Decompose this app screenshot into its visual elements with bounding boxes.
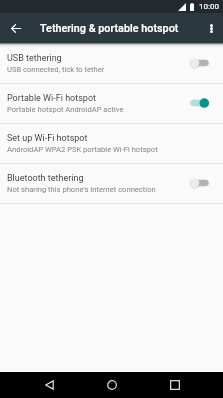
button[interactable]: Home xyxy=(99,372,125,398)
button[interactable]: More options xyxy=(199,13,223,43)
button[interactable]: Bluetooth tethering xyxy=(0,164,223,204)
staticText: AndroidAP WPA2 PSK portable Wi-Fi hotspo… xyxy=(7,145,158,154)
staticText: Tethering & portable hotspot xyxy=(40,22,179,35)
staticText: Set up Wi-Fi hotspot xyxy=(7,133,88,144)
button[interactable]: Portable Wi-Fi hotspot xyxy=(0,84,223,124)
staticText: USB connected, tick to tether xyxy=(7,65,105,74)
staticText: 10:00 xyxy=(199,2,219,11)
staticText: USB tethering xyxy=(7,53,62,64)
button[interactable]: Recent apps xyxy=(162,372,188,398)
staticText: Not sharing this phone's Internet connec… xyxy=(7,185,156,194)
button[interactable]: Set up Wi-Fi hotspot xyxy=(0,124,223,164)
button[interactable]: Back xyxy=(36,372,62,398)
staticText: Portable hotspot AndroidAP active xyxy=(7,105,124,114)
staticText: Portable Wi-Fi hotspot xyxy=(7,93,96,104)
staticText: Bluetooth tethering xyxy=(7,173,84,184)
button[interactable]: USB tethering xyxy=(0,44,223,84)
button[interactable]: Navigate up xyxy=(5,13,26,43)
